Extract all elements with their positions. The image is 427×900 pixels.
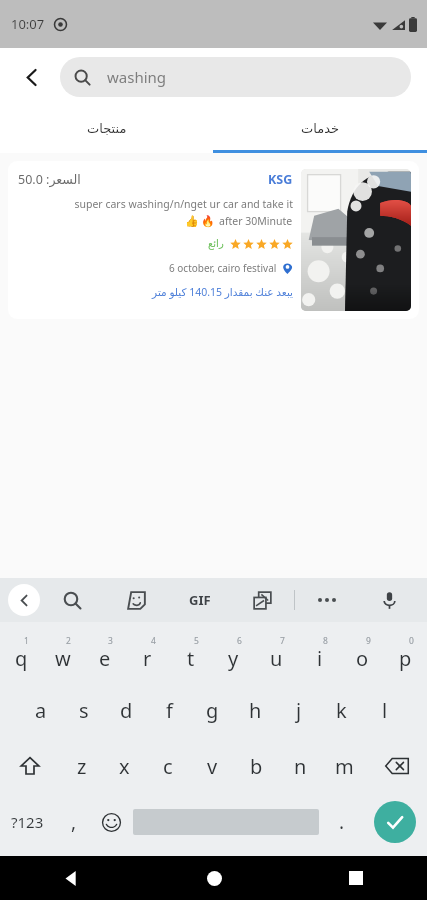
button[interactable]: l: [363, 682, 406, 738]
button[interactable]: Back: [8, 53, 56, 101]
button[interactable]: منتجات: [0, 106, 213, 150]
staticText: m: [335, 753, 354, 780]
button[interactable]: b: [234, 738, 278, 794]
button[interactable]: 0: [384, 626, 427, 682]
staticText: h: [249, 697, 262, 724]
button[interactable]: Translate: [231, 578, 294, 622]
button[interactable]: Back: [0, 856, 143, 900]
button[interactable]: .: [321, 794, 362, 850]
staticText: c: [163, 753, 173, 780]
button[interactable]: g: [191, 682, 234, 738]
button[interactable]: 7: [255, 626, 298, 682]
button[interactable]: v: [190, 738, 234, 794]
staticText: خدمات: [301, 121, 340, 136]
staticText: n: [294, 753, 307, 780]
button[interactable]: Shift: [0, 738, 60, 794]
staticText: g: [206, 697, 219, 724]
staticText: after 30Minute: [219, 214, 293, 228]
staticText: p: [399, 645, 412, 672]
button[interactable]: Emoji: [92, 794, 131, 850]
button[interactable]: More options: [295, 578, 358, 622]
staticText: 3: [108, 635, 113, 647]
button[interactable]: c: [146, 738, 190, 794]
button[interactable]: 2: [42, 626, 84, 682]
staticText: 0: [409, 635, 414, 647]
staticText: السعر: 50.0: [18, 171, 81, 188]
button[interactable]: ?123: [0, 794, 55, 850]
staticText: GIF: [189, 591, 211, 609]
button[interactable]: 3: [84, 626, 126, 682]
staticText: washing: [107, 67, 167, 87]
staticText: k: [336, 697, 347, 724]
staticText: 7: [280, 635, 285, 647]
button[interactable]: x: [103, 738, 146, 794]
staticText: r: [143, 645, 152, 672]
button[interactable]: Voice input: [358, 578, 421, 622]
staticText: i: [317, 645, 323, 672]
staticText: q: [15, 645, 28, 672]
staticText: 2: [66, 635, 71, 647]
staticText: super cars washing/n/nget ur car and tak…: [18, 197, 293, 211]
staticText: o: [356, 645, 369, 672]
button[interactable]: s: [62, 682, 105, 738]
staticText: يبعد عنك بمقدار 140.15 كيلو متر: [18, 285, 293, 299]
button[interactable]: 8: [298, 626, 341, 682]
button[interactable]: Home: [143, 856, 285, 900]
staticText: s: [79, 697, 89, 724]
staticText: رائع: [208, 238, 224, 250]
staticText: v: [207, 753, 218, 780]
staticText: z: [77, 753, 87, 780]
staticText: KSG: [268, 171, 293, 188]
staticText: u: [270, 645, 283, 672]
staticText: 🔥: [201, 215, 215, 228]
button[interactable]: 4: [126, 626, 169, 682]
button[interactable]: 5: [169, 626, 212, 682]
staticText: a: [35, 697, 47, 724]
button[interactable]: z: [60, 738, 103, 794]
staticText: e: [99, 645, 111, 672]
staticText: d: [120, 697, 133, 724]
button[interactable]: GIF: [168, 578, 231, 622]
staticText: ,: [71, 809, 77, 835]
staticText: .: [339, 809, 345, 835]
button[interactable]: 1: [0, 626, 42, 682]
button[interactable]: a: [20, 682, 62, 738]
staticText: b: [250, 753, 263, 780]
staticText: x: [119, 753, 130, 780]
button[interactable]: k: [320, 682, 363, 738]
staticText: 6: [237, 635, 242, 647]
button[interactable]: Stickers: [104, 578, 168, 622]
button[interactable]: 6: [212, 626, 255, 682]
button[interactable]: Recent apps: [285, 856, 427, 900]
staticText: منتجات: [87, 121, 127, 136]
button[interactable]: m: [322, 738, 366, 794]
staticText: y: [228, 645, 239, 672]
button[interactable]: 9: [341, 626, 384, 682]
button[interactable]: خدمات: [213, 106, 427, 150]
button[interactable]: السعر: 50.0: [8, 161, 419, 319]
button[interactable]: ,: [55, 794, 92, 850]
staticText: 👍: [185, 215, 199, 228]
button[interactable]: Expand toolbar: [8, 584, 40, 616]
staticText: 5: [194, 635, 199, 647]
staticText: 6 october, cairo festival: [169, 261, 277, 275]
button[interactable]: Enter: [362, 794, 427, 850]
button[interactable]: n: [278, 738, 322, 794]
button[interactable]: d: [105, 682, 148, 738]
staticText: 1: [24, 635, 29, 647]
button[interactable]: Search: [40, 578, 104, 622]
button[interactable]: h: [234, 682, 277, 738]
staticText: 9: [366, 635, 371, 647]
staticText: t: [187, 645, 195, 672]
button[interactable]: washing: [60, 57, 411, 97]
staticText: j: [296, 697, 302, 724]
staticText: 10:07: [11, 15, 45, 33]
staticText: w: [55, 645, 71, 672]
staticText: ?123: [11, 812, 44, 832]
button[interactable]: Backspace: [366, 738, 427, 794]
staticText: 8: [323, 635, 328, 647]
staticText: f: [166, 697, 173, 724]
button[interactable]: f: [148, 682, 191, 738]
button[interactable]: j: [277, 682, 320, 738]
